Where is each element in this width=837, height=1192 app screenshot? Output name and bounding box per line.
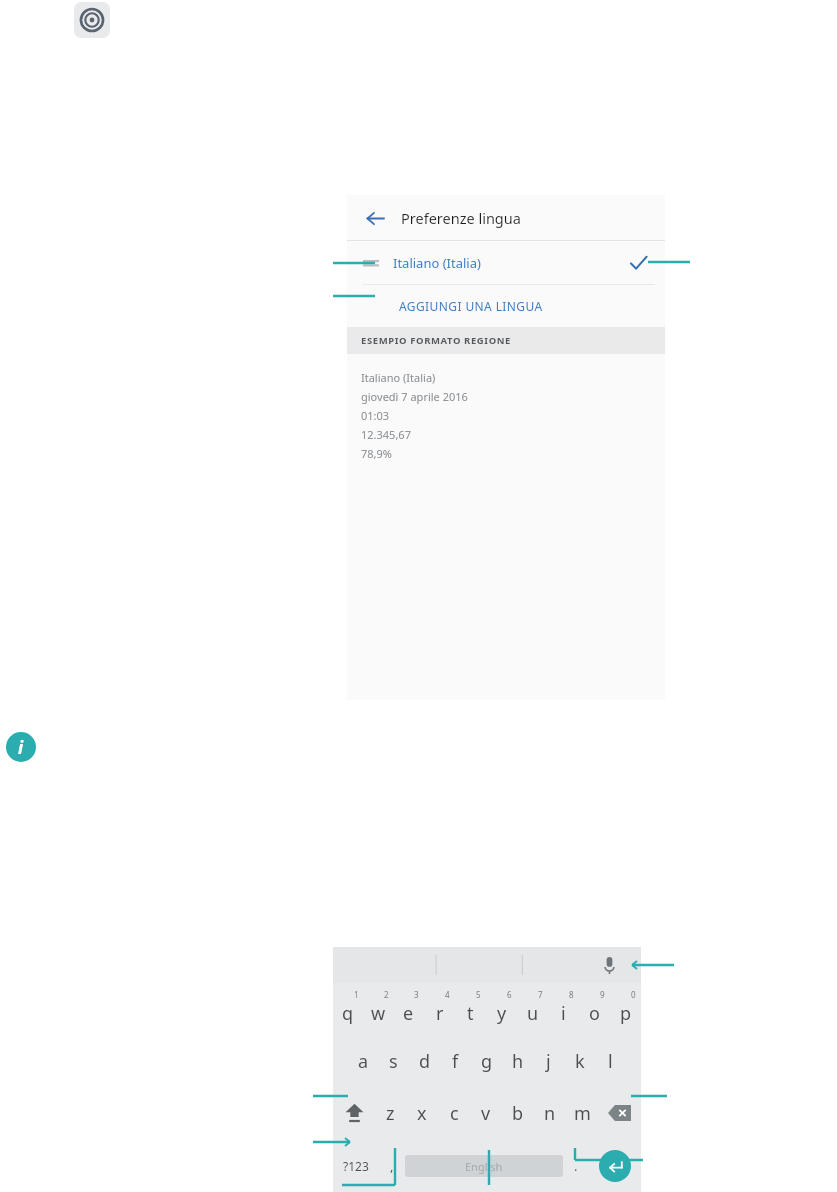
button[interactable]: , — [379, 1139, 405, 1192]
button[interactable]: a — [348, 1035, 378, 1087]
button[interactable]: 6 — [486, 983, 517, 1035]
staticText: 2 — [384, 989, 389, 1000]
staticText: p — [620, 1001, 632, 1026]
staticText: i — [561, 1001, 566, 1026]
staticText: 01:03 — [361, 408, 390, 423]
staticText: ESEMPIO FORMATO REGIONE — [361, 334, 512, 347]
staticText: 12.345,67 — [361, 427, 411, 442]
staticText: English — [465, 1159, 503, 1174]
button[interactable]: . — [563, 1139, 589, 1192]
other: Selected — [625, 250, 651, 276]
staticText: o — [589, 1001, 600, 1026]
staticText: giovedì 7 aprile 2016 — [361, 389, 468, 404]
button[interactable]: 5 — [455, 983, 486, 1035]
button[interactable]: b — [502, 1087, 534, 1139]
button[interactable]: m — [566, 1087, 598, 1139]
staticText: u — [527, 1001, 539, 1026]
button[interactable]: h — [502, 1035, 533, 1087]
staticText: b — [512, 1101, 524, 1126]
staticText: g — [481, 1049, 493, 1074]
staticText: s — [389, 1049, 398, 1074]
button[interactable]: 8 — [548, 983, 579, 1035]
button[interactable]: 3 — [393, 983, 424, 1035]
button[interactable]: v — [470, 1087, 502, 1139]
button[interactable]: s — [378, 1035, 409, 1087]
staticText: a — [358, 1049, 369, 1074]
button[interactable]: Voice input — [597, 953, 621, 977]
button[interactable]: Italiano (Italia) — [347, 241, 665, 284]
staticText: , — [390, 1157, 394, 1175]
staticText: ?123 — [343, 1158, 369, 1174]
button[interactable]: Settings — [74, 2, 110, 38]
staticText: j — [546, 1049, 551, 1074]
staticText: 9 — [600, 989, 605, 1000]
staticText: 4 — [445, 989, 450, 1000]
staticText: q — [342, 1001, 354, 1026]
button[interactable]: 7 — [517, 983, 548, 1035]
staticText: y — [497, 1001, 507, 1026]
staticText: 8 — [569, 989, 574, 1000]
staticText: l — [608, 1049, 613, 1074]
staticText: x — [417, 1101, 427, 1126]
staticText: d — [419, 1049, 431, 1074]
staticText: 3 — [414, 989, 419, 1000]
staticText: 6 — [507, 989, 512, 1000]
button[interactable]: 9 — [579, 983, 610, 1035]
button[interactable]: d — [409, 1035, 440, 1087]
button[interactable]: Backspace — [598, 1087, 641, 1139]
staticText: 1 — [354, 989, 359, 1000]
button[interactable]: English — [405, 1155, 563, 1177]
staticText: Italiano (Italia) — [393, 254, 481, 272]
staticText: 78,9% — [361, 446, 392, 461]
button[interactable]: 4 — [424, 983, 455, 1035]
staticText: AGGIUNGI UNA LINGUA — [399, 298, 543, 314]
button[interactable]: Enter — [589, 1139, 641, 1192]
button[interactable]: ?123 — [333, 1139, 379, 1192]
button[interactable]: Information — [6, 732, 36, 762]
button[interactable]: x — [406, 1087, 438, 1139]
staticText: c — [450, 1101, 459, 1126]
staticText: Preferenze lingua — [401, 208, 521, 228]
staticText: Italiano (Italia) — [361, 370, 436, 385]
button[interactable]: Back — [363, 206, 387, 230]
staticText: r — [436, 1001, 444, 1026]
staticText: v — [481, 1101, 491, 1126]
button[interactable]: f — [440, 1035, 471, 1087]
button[interactable]: 1 — [333, 983, 363, 1035]
staticText: 7 — [538, 989, 543, 1000]
staticText: i — [18, 736, 24, 759]
button[interactable]: g — [471, 1035, 502, 1087]
staticText: h — [512, 1049, 524, 1074]
staticText: z — [386, 1101, 395, 1126]
button[interactable]: z — [375, 1087, 406, 1139]
button[interactable]: c — [438, 1087, 470, 1139]
staticText: w — [371, 1001, 386, 1026]
button[interactable]: l — [595, 1035, 626, 1087]
staticText: f — [452, 1049, 459, 1074]
button[interactable]: j — [533, 1035, 564, 1087]
button[interactable]: k — [564, 1035, 595, 1087]
button[interactable]: Shift — [333, 1087, 375, 1139]
staticText: n — [544, 1101, 556, 1126]
button[interactable]: n — [534, 1087, 566, 1139]
button[interactable]: 0 — [610, 983, 641, 1035]
staticText: 0 — [631, 989, 636, 1000]
staticText: t — [467, 1001, 474, 1026]
staticText: 5 — [476, 989, 481, 1000]
staticText: . — [574, 1157, 578, 1175]
button[interactable]: 2 — [363, 983, 393, 1035]
staticText: m — [574, 1101, 591, 1126]
staticText: e — [403, 1001, 414, 1026]
button[interactable]: AGGIUNGI UNA LINGUA — [347, 285, 665, 327]
staticText: k — [575, 1049, 585, 1074]
